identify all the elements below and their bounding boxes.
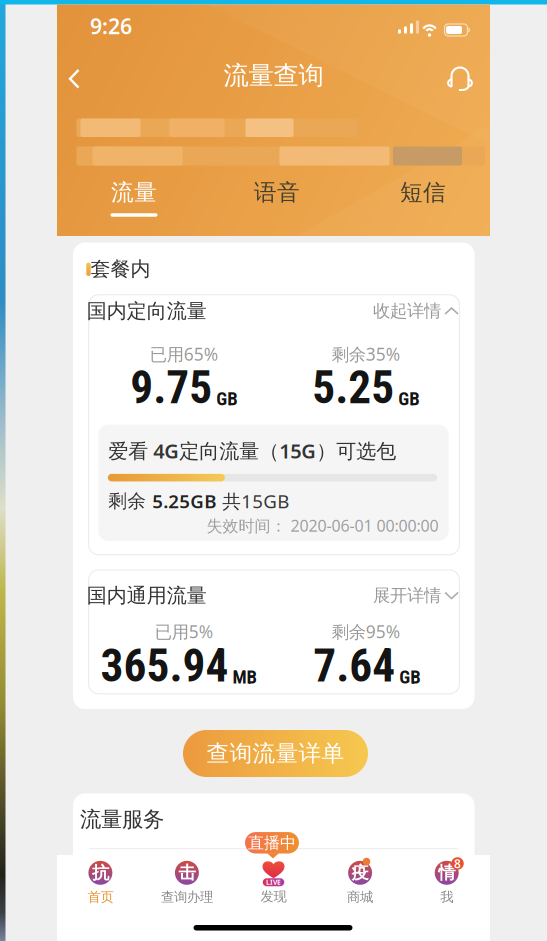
- staticText: 已用5%: [155, 620, 213, 643]
- staticText: 爱看 4G定向流量（15G）可选包: [108, 437, 396, 464]
- staticText: 失效时间： 2020-06-01 00:00:00: [206, 515, 438, 536]
- staticText: 9.75: [130, 361, 212, 414]
- staticText: 9:26: [90, 12, 132, 40]
- button[interactable]: 展开详情: [369, 581, 462, 610]
- staticText: 5.25GB: [152, 489, 216, 513]
- staticText: 国内通用流量: [87, 583, 207, 608]
- staticText: GB: [399, 666, 420, 688]
- staticText: 共15GB: [216, 489, 289, 513]
- staticText: LIVE: [266, 878, 281, 887]
- staticText: 查询办理: [161, 889, 213, 905]
- staticText: 语音: [254, 179, 300, 206]
- staticText: 收起详情: [373, 300, 441, 322]
- staticText: 商城: [347, 889, 373, 905]
- staticText: 短信: [400, 179, 446, 206]
- staticText: 已用65%: [150, 342, 218, 365]
- staticText: 直播中: [248, 833, 296, 853]
- button[interactable]: 情: [435, 861, 459, 905]
- button[interactable]: 收起详情: [369, 296, 462, 326]
- button[interactable]: 流量: [105, 173, 163, 212]
- button[interactable]: 语音: [248, 173, 306, 212]
- staticText: 5.25: [312, 361, 394, 414]
- staticText: 剩余35%: [332, 342, 400, 365]
- staticText: 疫: [352, 862, 369, 883]
- staticText: 我: [440, 889, 453, 905]
- button[interactable]: 短信: [394, 173, 452, 212]
- staticText: 击: [178, 862, 195, 883]
- button[interactable]: 查询流量详单: [183, 730, 368, 777]
- staticText: 首页: [87, 889, 113, 905]
- button[interactable]: 返回: [59, 62, 89, 96]
- staticText: 查询流量详单: [206, 740, 344, 767]
- staticText: 套餐内: [90, 257, 150, 281]
- button[interactable]: 疫: [347, 861, 373, 905]
- staticText: 发现: [260, 888, 286, 905]
- staticText: 国内定向流量: [87, 299, 207, 323]
- button[interactable]: 击: [161, 861, 213, 905]
- staticText: 抗: [92, 862, 109, 883]
- staticText: MB: [233, 666, 257, 688]
- staticText: 7.64: [313, 639, 395, 692]
- staticText: 展开详情: [373, 585, 441, 606]
- staticText: GB: [216, 388, 237, 410]
- staticText: 流量服务: [80, 806, 164, 832]
- button[interactable]: LIVE: [260, 861, 286, 905]
- staticText: 流量: [111, 179, 157, 206]
- staticText: GB: [398, 388, 419, 410]
- staticText: 剩余95%: [332, 620, 400, 643]
- staticText: 剩余: [108, 490, 152, 513]
- staticText: 流量查询: [223, 60, 323, 91]
- staticText: 情: [438, 862, 455, 883]
- button[interactable]: 抗: [87, 861, 113, 905]
- button[interactable]: 客服: [444, 60, 480, 97]
- staticText: 8: [454, 855, 461, 871]
- staticText: 365.94: [101, 639, 229, 692]
